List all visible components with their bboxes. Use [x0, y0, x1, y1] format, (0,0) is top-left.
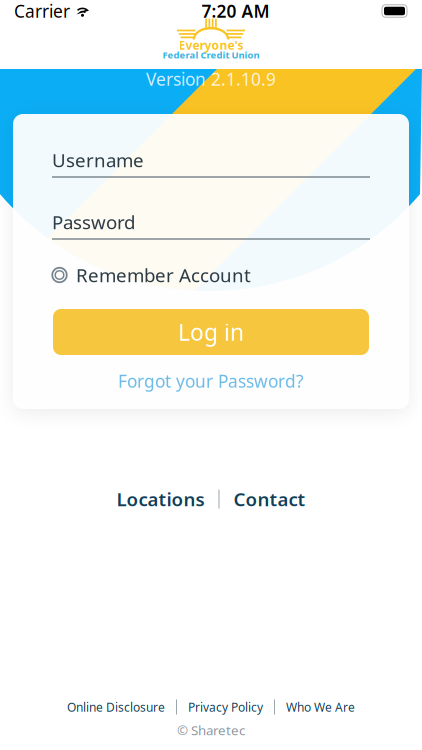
- button[interactable]: Log in: [53, 309, 369, 355]
- staticText: Username: [52, 148, 144, 172]
- staticText: Forgot your Password?: [118, 369, 304, 392]
- staticText: 7:20 AM: [201, 0, 269, 22]
- button[interactable]: Online Disclosure: [67, 699, 165, 715]
- staticText: Carrier: [14, 0, 70, 22]
- staticText: Version 2.1.10.9: [146, 67, 276, 90]
- button[interactable]: Who We Are: [286, 699, 355, 715]
- staticText: Log in: [178, 317, 244, 347]
- staticText: Federal Credit Union: [162, 49, 259, 61]
- staticText: Contact: [233, 487, 305, 511]
- staticText: Who We Are: [286, 699, 355, 715]
- button[interactable]: Locations: [116, 487, 204, 511]
- staticText: Online Disclosure: [67, 699, 165, 715]
- button[interactable]: Forgot your Password?: [52, 370, 370, 392]
- staticText: Remember Account: [76, 263, 251, 287]
- staticText: Privacy Policy: [188, 699, 263, 715]
- staticText: © Sharetec: [177, 721, 245, 739]
- button[interactable]: Privacy Policy: [188, 699, 263, 715]
- staticText: Locations: [116, 487, 204, 511]
- staticText: Password: [52, 210, 135, 234]
- button[interactable]: Contact: [233, 487, 305, 511]
- staticText: Everyone's: [178, 37, 243, 53]
